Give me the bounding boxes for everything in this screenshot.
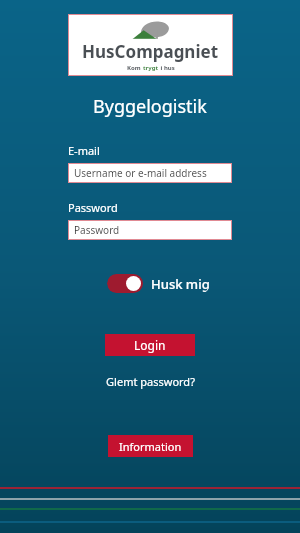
staticText: Login: [134, 337, 166, 353]
button[interactable]: Glemt password?: [90, 374, 210, 389]
staticText: Password: [68, 200, 118, 215]
staticText: i hus: [159, 64, 175, 72]
staticText: Information: [119, 439, 182, 454]
button[interactable]: Username or e-mail address: [68, 163, 232, 183]
button[interactable]: Login: [105, 334, 195, 356]
staticText: Byggelogistik: [93, 94, 207, 119]
button[interactable]: Husk mig: [107, 273, 210, 294]
staticText: trygt: [143, 64, 159, 72]
staticText: Username or e-mail address: [74, 166, 207, 180]
staticText: Husk mig: [151, 275, 210, 293]
button[interactable]: Information: [108, 435, 193, 457]
staticText: Kom: [127, 64, 143, 72]
staticText: HusCompagniet: [82, 40, 219, 63]
staticText: Password: [74, 223, 120, 237]
button[interactable]: Password: [68, 220, 232, 240]
staticText: E-mail: [68, 143, 100, 158]
staticText: Glemt password?: [106, 374, 195, 389]
